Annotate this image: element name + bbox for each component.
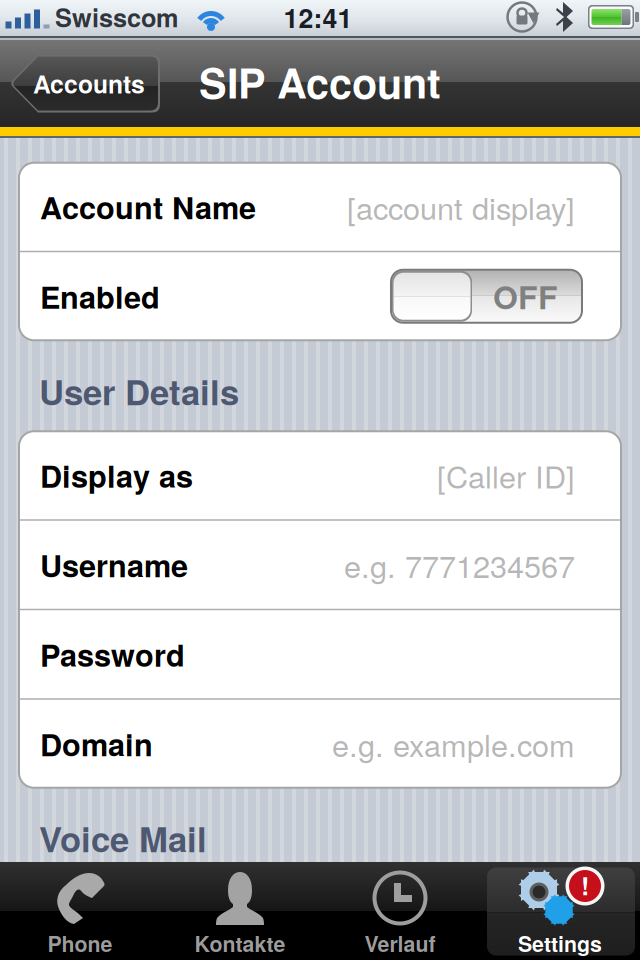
staticText: Swisscom — [55, 0, 179, 35]
staticText: Phone — [47, 928, 112, 958]
staticText: [account display] — [347, 185, 575, 229]
button[interactable]: Accounts — [10, 54, 160, 112]
button[interactable]: Phone — [0, 862, 160, 960]
staticText: SIP Account — [199, 52, 441, 111]
button[interactable]: Verlauf — [320, 862, 480, 960]
staticText: Settings — [518, 928, 602, 958]
staticText: Account Name — [40, 185, 256, 229]
staticText: [Caller ID] — [437, 453, 575, 497]
staticText: Domain — [40, 722, 153, 766]
staticText: e.g. example.com — [332, 722, 575, 766]
staticText: e.g. 7771234567 — [344, 543, 575, 587]
button[interactable]: Domain — [19, 700, 621, 788]
staticText: Username — [40, 543, 188, 587]
staticText: User Details — [39, 366, 239, 416]
button[interactable]: Password — [19, 610, 621, 698]
staticText: OFF — [493, 273, 558, 319]
button[interactable]: Kontakte — [160, 862, 320, 960]
button[interactable]: Account Name — [19, 163, 621, 251]
staticText: ! — [581, 867, 589, 903]
button[interactable]: Username — [19, 521, 621, 609]
staticText: Verlauf — [364, 928, 435, 958]
staticText: Voice Mail — [39, 813, 207, 863]
button[interactable]: Enabled — [19, 252, 621, 340]
staticText: Display as — [40, 453, 193, 497]
staticText: Enabled — [40, 274, 160, 318]
button[interactable]: ! — [480, 862, 640, 960]
staticText: Accounts — [33, 66, 145, 101]
staticText: Kontakte — [194, 928, 285, 958]
staticText: 12:41 — [283, 0, 352, 36]
button[interactable]: Display as — [19, 431, 621, 519]
staticText: Password — [40, 632, 185, 676]
